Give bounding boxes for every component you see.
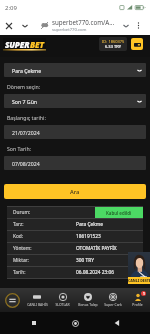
staticText: superbet770.com/A...	[52, 18, 115, 26]
staticText: superbet770.com	[52, 27, 87, 33]
staticText: Kod:	[13, 233, 24, 240]
button[interactable]: Home	[67, 315, 83, 331]
staticText: OTOMATİK PAYFİX	[76, 245, 117, 252]
staticText: Durum:	[13, 209, 31, 216]
staticText: SUPER	[5, 39, 30, 50]
button[interactable]: More options	[132, 19, 145, 32]
button[interactable]: Deposit	[131, 38, 143, 50]
button[interactable]: Back	[109, 315, 125, 331]
button[interactable]: Bonus Talep	[75, 288, 100, 312]
button[interactable]: CANLI BAHİS	[24, 288, 50, 312]
staticText: Kabul edildi	[106, 210, 132, 216]
button[interactable]: Show more	[18, 19, 31, 32]
staticText: CANLI BAHİS	[27, 302, 48, 307]
button[interactable]: Expand	[119, 19, 132, 32]
button[interactable]: 1	[125, 288, 150, 312]
button[interactable]: Superbet home	[3, 38, 46, 51]
button[interactable]: Super Cark	[100, 288, 125, 312]
button[interactable]: Son 7 Gün	[12, 94, 142, 108]
staticText: Bonus Talep	[78, 302, 98, 307]
staticText: CANLI DESTEK	[128, 278, 150, 283]
staticText: Super Cark	[104, 302, 122, 307]
staticText: 300 TRY	[76, 257, 94, 264]
staticText: Son Tarih:	[7, 145, 31, 152]
staticText: 21/07/2024	[12, 129, 40, 136]
button[interactable]: Recent apps	[26, 315, 42, 331]
button[interactable]: 07/08/2024	[12, 156, 142, 170]
staticText: 186191523	[76, 233, 101, 240]
staticText: 07/08/2024	[12, 160, 40, 167]
staticText: 2:09	[5, 4, 17, 12]
staticText: Profile	[132, 302, 143, 307]
button[interactable]: ID: 1860375	[99, 37, 127, 51]
staticText: ID: 1860375	[102, 39, 125, 44]
button[interactable]: SLOTLAR	[50, 288, 75, 312]
staticText: Tarih:	[13, 269, 26, 276]
button[interactable]: Close	[2, 19, 15, 32]
staticText: Dönem seçin:	[7, 83, 41, 90]
staticText: Ara	[70, 188, 80, 196]
staticText: 06.08.2024 23:06	[76, 269, 115, 276]
button[interactable]: Live support	[128, 252, 150, 284]
button[interactable]: Menu	[0, 288, 24, 312]
button[interactable]: Ara	[4, 184, 146, 199]
staticText: 1	[143, 292, 145, 296]
staticText: Miktar:	[13, 257, 29, 264]
staticText: BET	[30, 39, 44, 50]
button[interactable]: 21/07/2024	[12, 125, 142, 139]
staticText: 6.33 TRY	[105, 44, 121, 49]
staticText: Para Çekme	[76, 221, 103, 228]
staticText: Yöntem:	[13, 245, 32, 252]
staticText: Son 7 Gün	[12, 98, 38, 105]
staticText: SLOTLAR	[55, 302, 70, 307]
button[interactable]: Para Çekme	[12, 63, 142, 77]
staticText: Para Çekme	[12, 67, 42, 74]
staticText: Tarz:	[13, 221, 24, 228]
staticText: Başlangıç tarihi:	[7, 114, 46, 121]
